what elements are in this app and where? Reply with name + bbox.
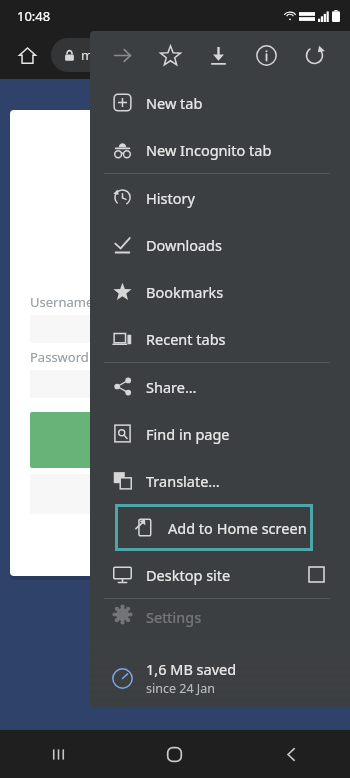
button[interactable]: Back <box>233 730 350 778</box>
button[interactable]: Settings <box>90 599 350 629</box>
button[interactable]: Recents <box>0 730 116 778</box>
button[interactable]: Bookmark <box>148 33 192 77</box>
staticText: Username <box>30 293 94 311</box>
staticText: New tab <box>146 93 203 113</box>
staticText: New Incognito tab <box>146 140 272 160</box>
button[interactable]: Share… <box>90 363 350 410</box>
staticText: 1,6 MB saved <box>146 659 237 679</box>
staticText: Add to Home screen <box>168 518 307 538</box>
staticText: Find in page <box>146 424 230 444</box>
button[interactable] <box>30 412 222 468</box>
button[interactable]: Bookmarks <box>90 268 350 315</box>
button[interactable]: Recent tabs <box>90 315 350 362</box>
button[interactable]: Translate… <box>90 457 350 504</box>
button[interactable]: New tab <box>90 79 350 126</box>
staticText: Password <box>30 348 89 366</box>
button[interactable]: Download <box>196 33 240 77</box>
staticText: m <box>81 46 94 64</box>
button[interactable]: Home <box>116 730 233 778</box>
staticText: Bookmarks <box>146 282 224 302</box>
button[interactable]: Page info <box>244 33 288 77</box>
staticText: Translate… <box>146 471 220 491</box>
button[interactable]: Desktop site <box>90 551 350 598</box>
button[interactable]: Downloads <box>90 221 350 268</box>
staticText: Settings <box>146 607 202 627</box>
button[interactable]: Home <box>12 40 42 70</box>
staticText: History <box>146 188 195 208</box>
staticText: Share… <box>146 377 197 397</box>
button[interactable]: Find in page <box>90 410 350 457</box>
button[interactable]: New Incognito tab <box>90 126 350 173</box>
button[interactable]: Forward <box>100 33 144 77</box>
staticText: Desktop site <box>146 565 231 585</box>
button[interactable]: Reload <box>292 33 336 77</box>
button[interactable]: History <box>90 174 350 221</box>
staticText: Recent tabs <box>146 329 226 349</box>
button[interactable]: Add to Home screen <box>118 507 310 548</box>
button[interactable]: m <box>51 38 171 72</box>
button[interactable]: 1,6 MB saved <box>90 649 350 707</box>
staticText: 10:48 <box>17 7 51 25</box>
staticText: since 24 Jan <box>146 680 215 697</box>
staticText: Downloads <box>146 235 222 255</box>
